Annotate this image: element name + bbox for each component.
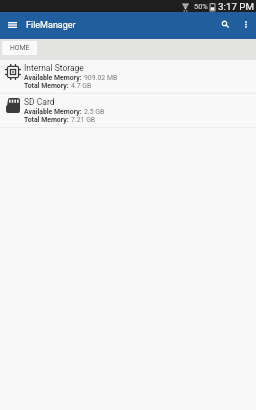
staticText: SD Card	[24, 97, 55, 107]
staticText: 3:17 PM	[218, 1, 255, 12]
staticText: 2.5 GB	[84, 108, 105, 116]
button[interactable]: Internal Storage	[0, 60, 256, 93]
staticText: HOME	[10, 44, 30, 52]
staticText: Total Memory:	[24, 82, 71, 90]
staticText: 50%	[194, 2, 208, 11]
staticText: Available Memory:	[24, 108, 84, 116]
button[interactable]: HOME	[2, 41, 37, 55]
button[interactable]: Search	[213, 12, 235, 39]
button[interactable]: Open navigation drawer	[0, 12, 23, 39]
staticText: 7.21 GB	[71, 116, 96, 124]
button[interactable]: SD Card	[0, 94, 256, 127]
staticText: Total Memory:	[24, 116, 71, 124]
staticText: 909.02 MB	[84, 74, 118, 82]
staticText: Internal Storage	[24, 63, 84, 73]
staticText: FileManager	[26, 20, 76, 31]
button[interactable]: More options	[236, 12, 256, 39]
staticText: 4.7 GB	[71, 82, 92, 90]
staticText: Available Memory:	[24, 74, 84, 82]
